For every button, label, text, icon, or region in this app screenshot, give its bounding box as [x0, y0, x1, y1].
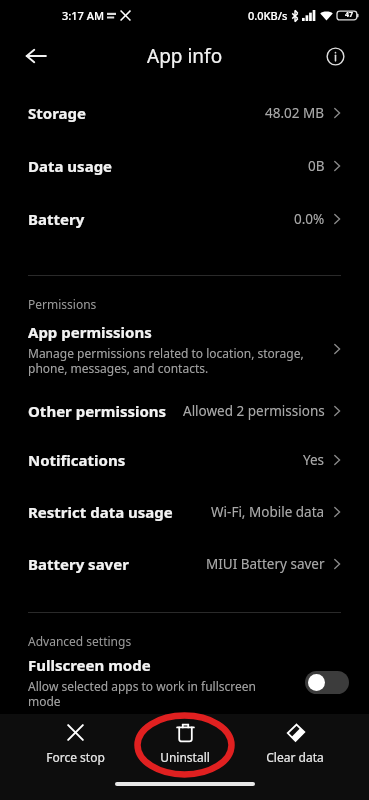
staticText: App permissions	[28, 322, 152, 342]
button[interactable]: Storage	[0, 86, 369, 139]
staticText: Permissions	[28, 296, 97, 312]
staticText: Clear data	[266, 749, 324, 765]
staticText: Allow selected apps to work in fullscree…	[28, 678, 256, 709]
button[interactable]: Clear data	[256, 720, 334, 767]
button[interactable]: Force stop	[36, 720, 115, 767]
staticText: Notifications	[28, 450, 126, 470]
staticText: 0.0%	[294, 210, 325, 228]
staticText: 3:17 AM	[62, 8, 105, 23]
button[interactable]: Battery saver	[0, 538, 369, 590]
staticText: Fullscreen mode	[28, 655, 151, 675]
button[interactable]: Notifications	[0, 434, 369, 486]
button[interactable]: Battery	[0, 192, 369, 245]
staticText: Battery	[28, 209, 85, 229]
staticText: Wi-Fi, Mobile data	[211, 503, 325, 521]
staticText: MIUI Battery saver	[206, 555, 325, 573]
staticText: Force stop	[46, 749, 105, 765]
staticText: Battery saver	[28, 554, 129, 574]
staticText: 47	[345, 10, 354, 20]
button[interactable]: App permissions	[0, 320, 369, 382]
button[interactable]: Other permissions	[0, 388, 369, 434]
staticText: Manage permissions related to location, …	[28, 345, 304, 376]
button[interactable]: Fullscreen mode	[0, 655, 369, 709]
button[interactable]: Fullscreen mode toggle	[305, 671, 349, 694]
button[interactable]: Restrict data usage	[0, 486, 369, 538]
staticText: 0.0KB/s	[248, 8, 288, 23]
staticText: Uninstall	[160, 749, 210, 765]
button[interactable]: Uninstall	[150, 720, 220, 767]
staticText: Other permissions	[28, 401, 167, 421]
staticText: 48.02 MB	[265, 104, 325, 122]
staticText: 0B	[308, 157, 325, 175]
staticText: Allowed 2 permissions	[183, 402, 325, 420]
button[interactable]: Data usage	[0, 139, 369, 192]
staticText: Data usage	[28, 156, 113, 176]
staticText: App info	[147, 43, 223, 69]
staticText: Storage	[28, 103, 86, 123]
button[interactable]: Back	[16, 36, 56, 76]
staticText: Restrict data usage	[28, 502, 173, 522]
button[interactable]: App details	[315, 36, 355, 76]
staticText: Advanced settings	[28, 633, 132, 649]
staticText: Yes	[303, 451, 325, 469]
